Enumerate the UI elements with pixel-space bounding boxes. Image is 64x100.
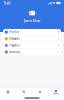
- staticText: Rewards: [9, 37, 19, 40]
- button[interactable]: Profile: [48, 88, 64, 96]
- staticText: 9:41: [3, 0, 10, 6]
- staticText: Payment: [9, 44, 20, 47]
- button[interactable]: Profile: [3, 29, 61, 35]
- button[interactable]: Security: [3, 48, 61, 55]
- staticText: Profile: [9, 30, 19, 34]
- button[interactable]: Rewards: [3, 35, 61, 42]
- button[interactable]: Activity: [32, 88, 48, 96]
- staticText: Jane Doe: [24, 18, 40, 23]
- button[interactable]: Payment: [3, 42, 61, 48]
- staticText: Security: [9, 50, 19, 54]
- button[interactable]: Home: [0, 88, 16, 96]
- button[interactable]: Search: [16, 88, 32, 96]
